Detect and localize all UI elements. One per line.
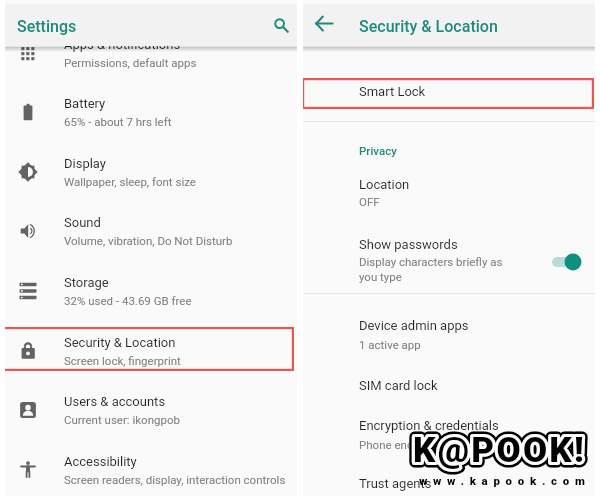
staticText: Privacy <box>359 144 397 157</box>
button[interactable]: Accessibility <box>5 442 297 496</box>
button[interactable]: Smart Lock <box>303 70 595 114</box>
staticText: Battery <box>64 96 106 111</box>
button[interactable]: Search <box>267 10 295 38</box>
button[interactable]: Back <box>311 10 338 37</box>
staticText: Display characters briefly as you type <box>359 255 503 284</box>
staticText: 1 active app <box>359 338 421 351</box>
staticText: 32% used - 43.69 GB free <box>64 294 192 307</box>
button[interactable]: Location <box>303 166 595 214</box>
staticText: Smart Lock <box>359 84 426 99</box>
staticText: SIM card lock <box>359 378 438 393</box>
button[interactable]: Apps & notifications <box>5 46 297 83</box>
button[interactable]: Encryption & credentials <box>303 408 595 456</box>
button[interactable]: Trust agents <box>303 466 595 496</box>
button[interactable]: Display <box>5 144 297 202</box>
staticText: Phone encrypted <box>359 438 446 451</box>
staticText: Device admin apps <box>359 318 469 333</box>
button[interactable]: Security & Location <box>5 323 297 381</box>
button[interactable]: SIM card lock <box>303 368 595 408</box>
button[interactable]: Users & accounts <box>5 382 297 440</box>
staticText: Apps & notifications <box>64 46 181 52</box>
staticText: OFF <box>359 195 380 208</box>
button[interactable]: Show passwords <box>303 226 595 288</box>
staticText: Screen lock, fingerprint <box>64 354 181 367</box>
button[interactable]: Storage <box>5 263 297 321</box>
staticText: Accessibility <box>64 454 137 469</box>
button[interactable]: Sound <box>5 203 297 261</box>
staticText: Display <box>64 156 106 171</box>
staticText: Settings <box>17 17 77 36</box>
staticText: Current user: ikongpob <box>64 413 180 426</box>
button[interactable]: Device admin apps <box>303 308 595 356</box>
staticText: Wallpaper, sleep, font size <box>64 175 196 188</box>
staticText: Screen readers, display, interaction con… <box>64 473 286 486</box>
staticText: Sound <box>64 215 101 230</box>
staticText: Volume, vibration, Do Not Disturb <box>64 234 233 247</box>
staticText: Users & accounts <box>64 394 166 409</box>
staticText: Security & Location <box>64 335 176 350</box>
staticText: Location <box>359 177 410 192</box>
staticText: Permissions, default apps <box>64 56 197 69</box>
staticText: Encryption & credentials <box>359 418 499 433</box>
staticText: Show passwords <box>359 237 458 252</box>
staticText: Storage <box>64 275 109 290</box>
staticText: Security & Location <box>359 17 498 36</box>
staticText: 65% - about 7 hrs left <box>64 115 172 128</box>
staticText: Trust agents <box>359 476 432 491</box>
button[interactable]: Battery <box>5 84 297 142</box>
